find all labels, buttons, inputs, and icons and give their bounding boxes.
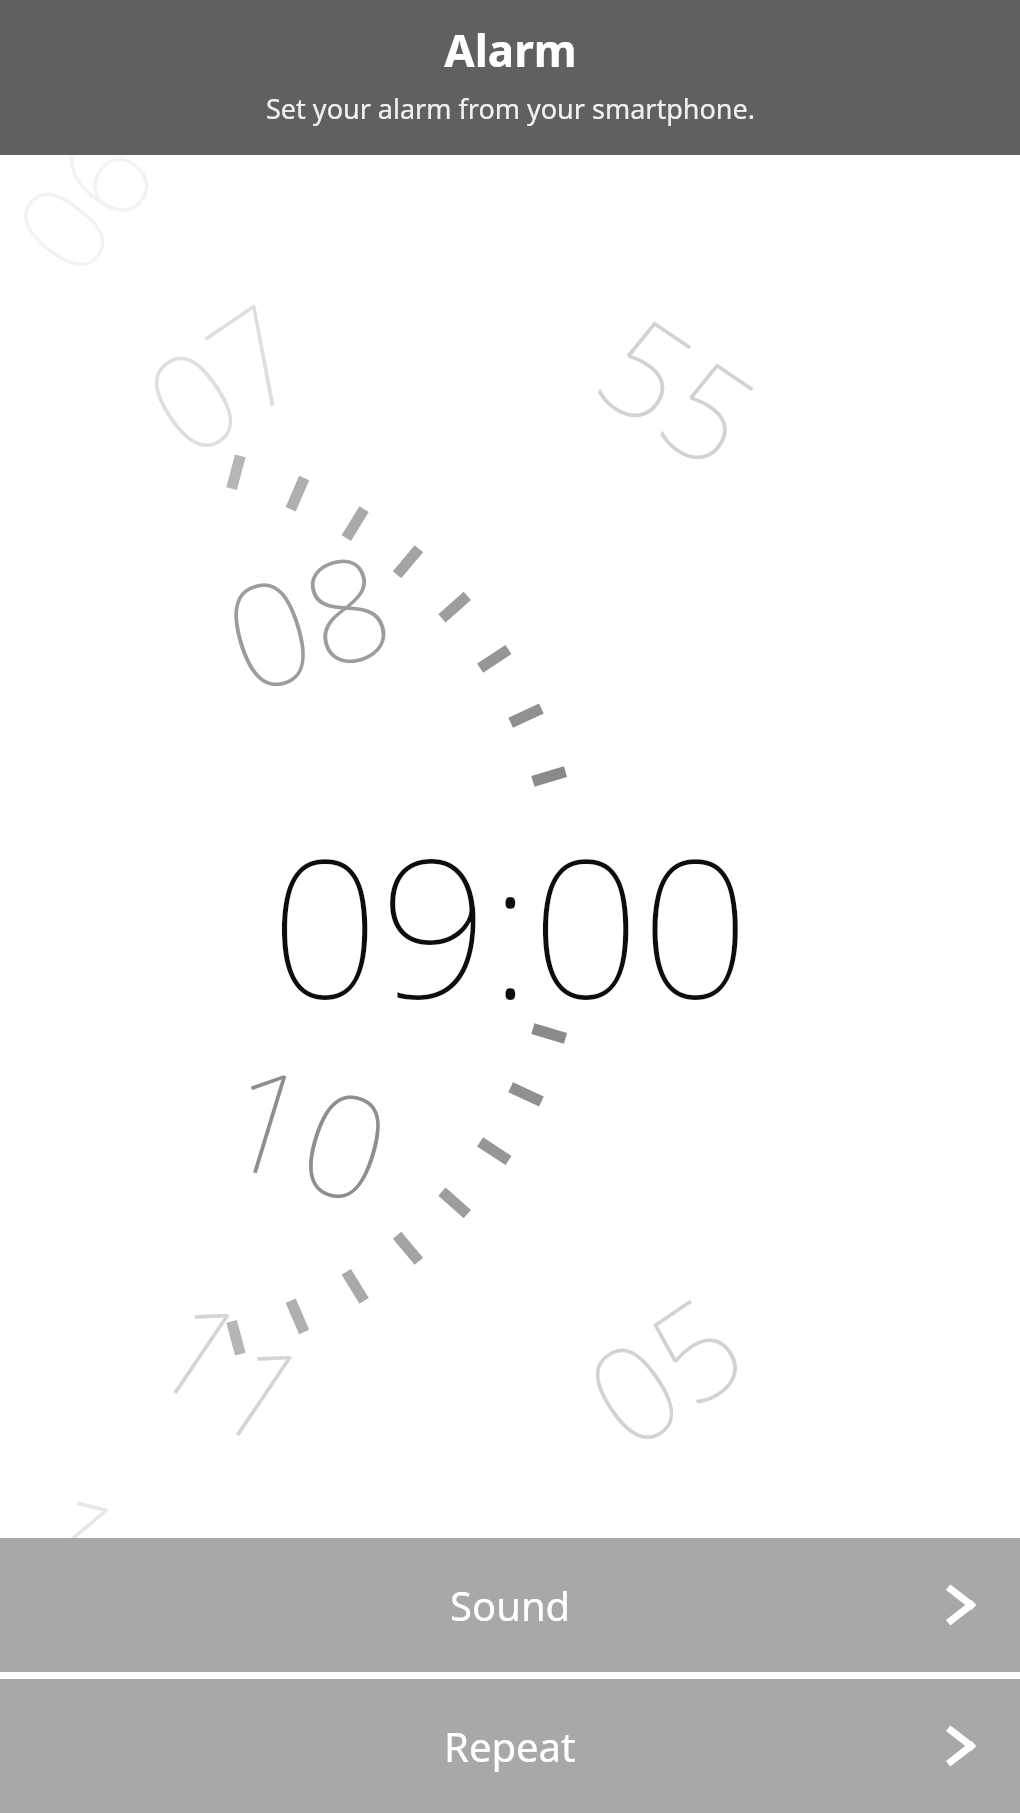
staticText: 06 xyxy=(0,96,189,305)
staticText: 12 xyxy=(0,1453,206,1667)
staticText: Sound xyxy=(450,1578,571,1632)
staticText: 05 xyxy=(551,1253,776,1487)
staticText: 09:00 xyxy=(270,793,750,1055)
other: Sound xyxy=(938,1582,984,1628)
staticText: 55 xyxy=(566,273,791,507)
staticText: 11 xyxy=(120,1253,345,1487)
staticText: 07 xyxy=(110,261,335,495)
staticText: Set your alarm from your smartphone. xyxy=(266,90,755,127)
staticText: Repeat xyxy=(444,1719,576,1773)
button[interactable]: Sound xyxy=(0,1538,1020,1672)
staticText: Alarm xyxy=(444,20,577,80)
staticText: 10 xyxy=(201,1014,413,1246)
staticText: 08 xyxy=(201,502,413,734)
other: Repeat xyxy=(938,1723,984,1769)
button[interactable]: Repeat xyxy=(0,1679,1020,1813)
